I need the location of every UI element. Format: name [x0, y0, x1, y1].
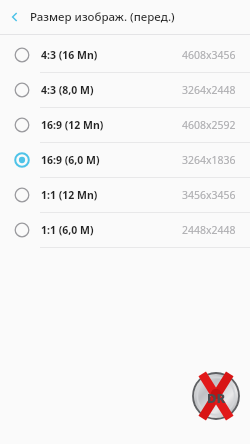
staticText: 3456x3456 — [182, 188, 236, 202]
staticText: 16:9 (6,0 M) — [41, 153, 100, 167]
staticText: 16:9 (12 Mn) — [41, 118, 104, 132]
button[interactable]: 1:1 (6,0 M) — [0, 213, 250, 247]
button[interactable]: 1:1 (12 Mn) — [0, 178, 250, 212]
staticText: Размер изображ. (перед.) — [30, 9, 175, 25]
staticText: DR — [207, 389, 226, 407]
staticText: 1:1 (6,0 M) — [41, 223, 94, 237]
button[interactable]: Back — [0, 2, 30, 32]
staticText: 1:1 (12 Mn) — [41, 188, 98, 202]
staticText: 3264x1836 — [182, 153, 236, 167]
button[interactable]: 16:9 (6,0 M) — [0, 143, 250, 177]
staticText: 4:3 (8,0 M) — [41, 83, 94, 97]
staticText: 4608x2592 — [182, 118, 236, 132]
staticText: 3264x2448 — [182, 83, 236, 97]
button[interactable]: 4:3 (8,0 M) — [0, 73, 250, 107]
staticText: 2448x2448 — [182, 223, 236, 237]
button[interactable]: 4:3 (16 Mn) — [0, 38, 250, 72]
staticText: 4608x3456 — [182, 48, 236, 62]
button[interactable]: 16:9 (12 Mn) — [0, 108, 250, 142]
staticText: 4:3 (16 Mn) — [41, 48, 98, 62]
